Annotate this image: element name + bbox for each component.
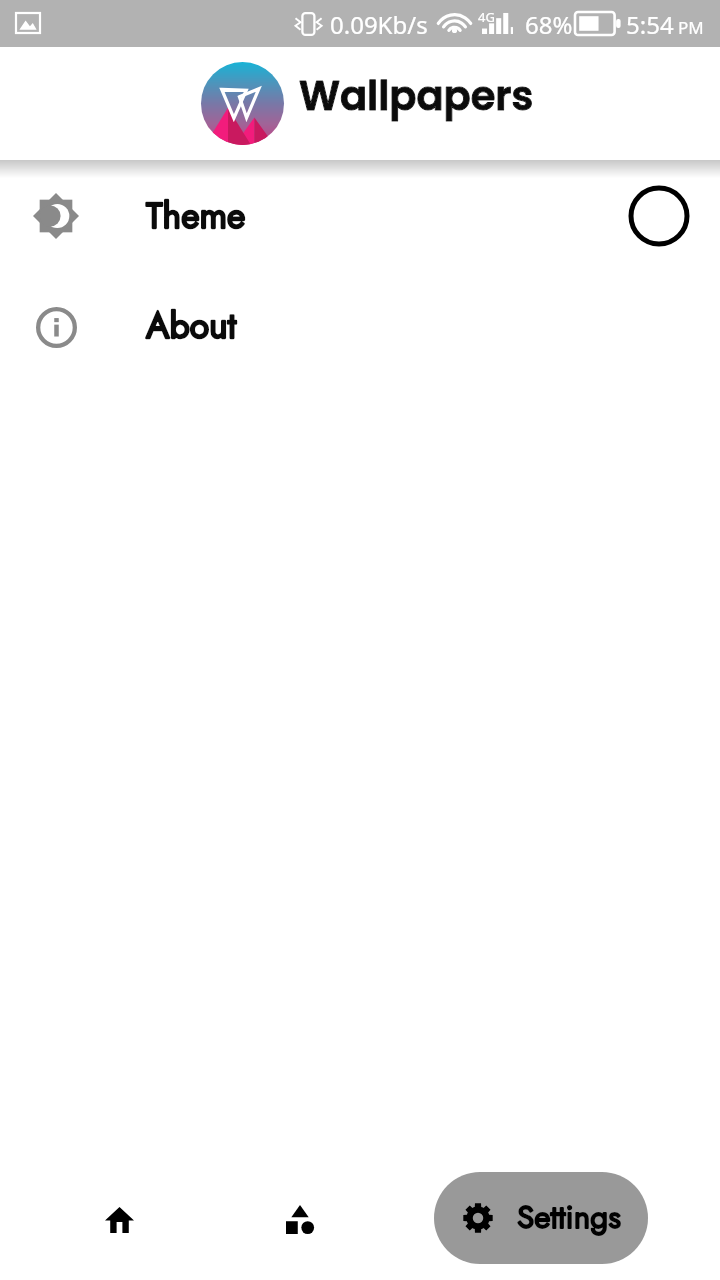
button[interactable]: About	[0, 274, 720, 382]
staticText: Wallpapers	[299, 68, 534, 124]
staticText: Theme	[146, 190, 246, 241]
staticText: About	[146, 300, 237, 351]
staticText: 0.09Kb/s	[330, 8, 428, 41]
staticText: 5:54	[626, 8, 674, 41]
staticText: 68%	[525, 8, 573, 41]
button[interactable]: Categories	[252, 1171, 348, 1267]
button[interactable]: Theme	[0, 162, 720, 270]
button[interactable]: Settings	[434, 1172, 648, 1264]
staticText: PM	[678, 16, 704, 39]
staticText: Settings	[517, 1194, 621, 1240]
staticText: About	[146, 300, 237, 351]
other: Theme colour	[626, 183, 692, 249]
staticText: 4G	[478, 8, 495, 26]
staticText: Settings	[517, 1194, 621, 1240]
button[interactable]: Home	[71, 1172, 167, 1268]
staticText: Theme	[146, 190, 246, 241]
staticText: Wallpapers	[299, 68, 534, 124]
